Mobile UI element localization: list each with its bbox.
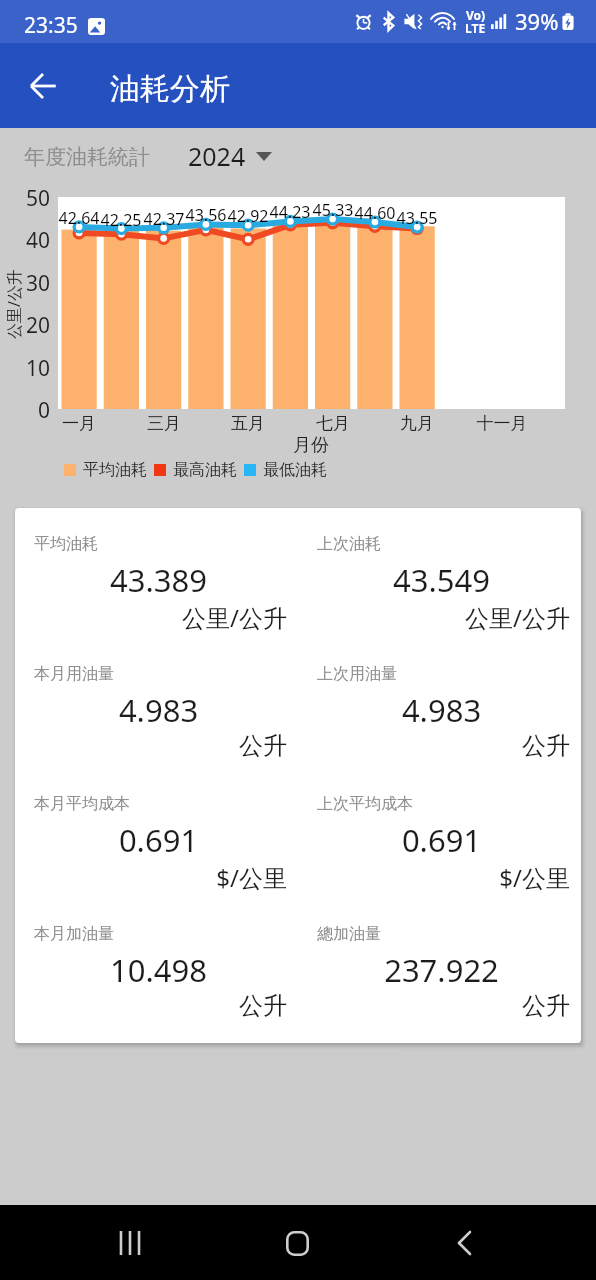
staticText: 44.60: [345, 202, 405, 224]
staticText: 43.389: [17, 559, 300, 601]
staticText: 本月平均成本: [34, 794, 130, 814]
staticText: 上次油耗: [317, 534, 381, 554]
staticText: 42.64: [49, 207, 109, 229]
button[interactable]: 本月平均成本: [15, 768, 298, 898]
button[interactable]: 總加油量: [298, 898, 581, 1028]
button[interactable]: 本月用油量: [15, 638, 298, 768]
staticText: 五月: [208, 413, 288, 434]
staticText: 公升: [298, 731, 570, 761]
staticText: 平均油耗: [83, 460, 147, 480]
staticText: 總加油量: [317, 924, 381, 944]
button[interactable]: 平均油耗: [15, 508, 298, 638]
button[interactable]: Recent apps: [105, 1218, 155, 1268]
staticText: 45.33: [303, 199, 363, 221]
staticText: 本月加油量: [34, 924, 114, 944]
button[interactable]: 上次平均成本: [298, 768, 581, 898]
staticText: 50: [0, 184, 50, 213]
staticText: 三月: [124, 413, 204, 434]
button[interactable]: Back: [25, 68, 61, 104]
button[interactable]: Home: [272, 1218, 322, 1268]
staticText: 年度油耗統計: [24, 144, 150, 170]
staticText: 43.549: [300, 559, 581, 601]
staticText: 4.983: [17, 689, 300, 731]
staticText: 10: [0, 354, 50, 383]
staticText: 237.922: [300, 949, 581, 991]
staticText: 公升: [15, 991, 287, 1021]
staticText: 0.691: [17, 819, 300, 861]
staticText: 2024: [188, 139, 246, 173]
staticText: 42.37: [134, 208, 194, 230]
staticText: $/公里: [298, 861, 570, 894]
staticText: 油耗分析: [110, 70, 230, 108]
staticText: 39%: [515, 6, 559, 36]
staticText: 43.55: [387, 207, 447, 229]
staticText: 月份: [261, 434, 361, 457]
staticText: 平均油耗: [34, 534, 98, 554]
staticText: 10.498: [17, 949, 300, 991]
staticText: 23:35: [24, 11, 78, 40]
staticText: 42.92: [218, 205, 278, 227]
staticText: 0.691: [300, 819, 581, 861]
staticText: 30: [0, 269, 50, 298]
staticText: 40: [0, 226, 50, 255]
staticText: 公里/公升: [3, 269, 25, 339]
button[interactable]: 上次用油量: [298, 638, 581, 768]
button[interactable]: 本月加油量: [15, 898, 298, 1028]
staticText: 十一月: [462, 413, 542, 434]
staticText: 公里/公升: [15, 601, 287, 634]
button[interactable]: Back: [439, 1218, 489, 1268]
staticText: 本月用油量: [34, 664, 114, 684]
staticText: Vo): [466, 7, 486, 23]
staticText: 九月: [377, 413, 457, 434]
staticText: 上次用油量: [317, 664, 397, 684]
staticText: 20: [0, 311, 50, 340]
staticText: 43.56: [176, 204, 236, 226]
staticText: 公升: [15, 731, 287, 761]
button[interactable]: 2024: [188, 139, 272, 173]
staticText: 44.23: [260, 201, 320, 223]
staticText: 公升: [298, 991, 570, 1021]
staticText: 0: [0, 396, 50, 425]
staticText: 最低油耗: [263, 460, 327, 480]
staticText: $/公里: [15, 861, 287, 894]
button[interactable]: 上次油耗: [298, 508, 581, 638]
staticText: 42.25: [91, 209, 151, 231]
staticText: 一月: [39, 413, 119, 434]
staticText: 4.983: [300, 689, 581, 731]
staticText: 最高油耗: [173, 460, 237, 480]
staticText: 公里/公升: [298, 601, 570, 634]
staticText: 七月: [293, 413, 373, 434]
staticText: LTE: [465, 20, 486, 36]
staticText: 上次平均成本: [317, 794, 413, 814]
